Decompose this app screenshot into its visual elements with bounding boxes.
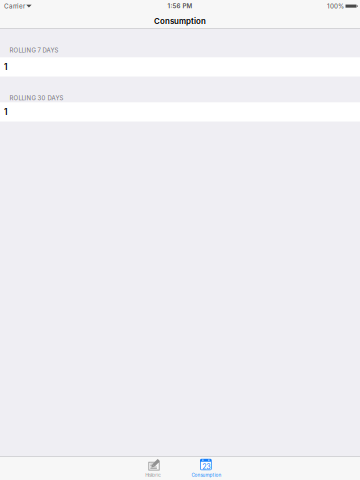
button[interactable]: 1 <box>0 57 360 76</box>
staticText: ROLLING 7 DAYS <box>9 47 58 54</box>
staticText: ROLLING 30 DAYS <box>9 94 63 102</box>
staticText: 1 <box>4 107 7 117</box>
staticText: 23 <box>202 462 210 471</box>
staticText: Carrier <box>4 2 25 10</box>
staticText: Consumption <box>154 16 206 26</box>
staticText: 1 <box>4 62 7 72</box>
staticText: 1:56 PM <box>167 2 192 10</box>
staticText: Historic <box>145 472 161 478</box>
staticText: 100% <box>327 2 344 10</box>
button[interactable]: 23 <box>192 456 244 480</box>
button[interactable]: Historic <box>145 456 197 480</box>
button[interactable]: 1 <box>0 102 360 121</box>
staticText: Consumption <box>192 472 222 478</box>
